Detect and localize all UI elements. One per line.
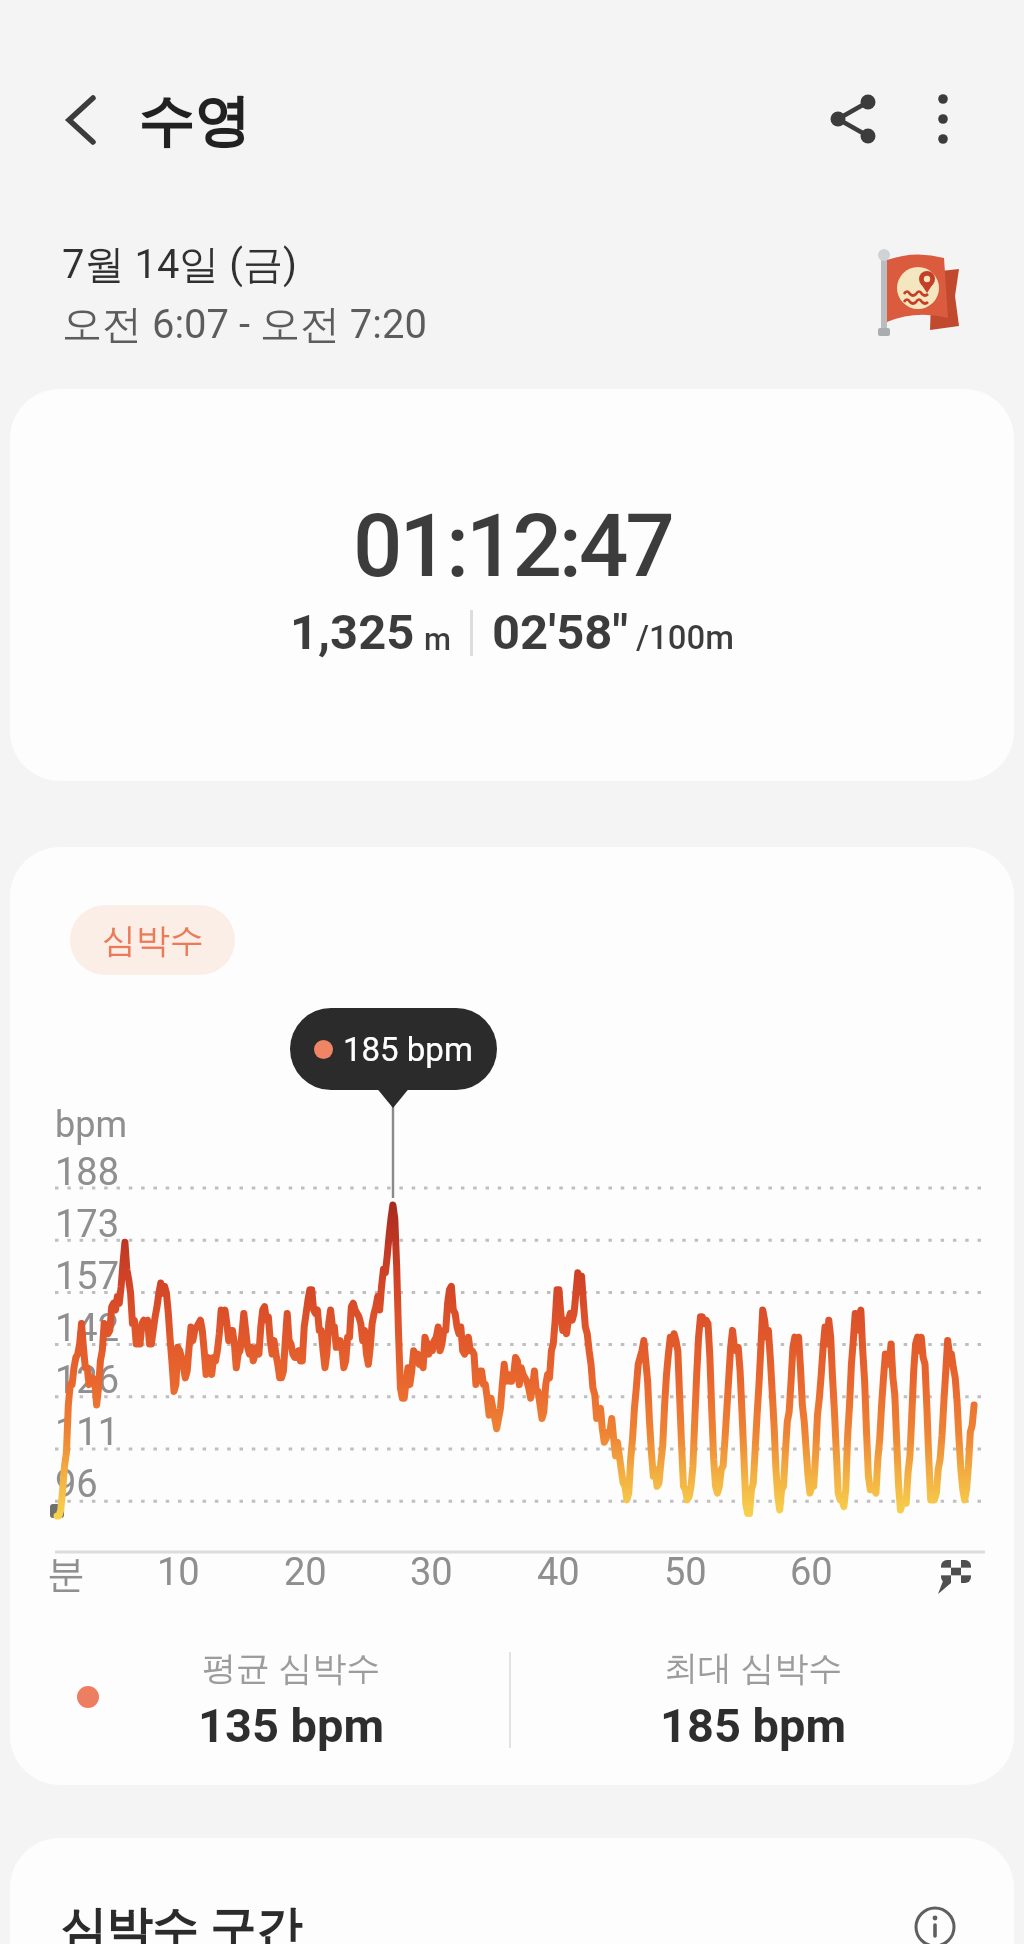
staticText: 185 bpm	[660, 1698, 847, 1753]
button[interactable]	[903, 1895, 967, 1944]
staticText: 심박수 구간	[60, 1900, 302, 1944]
staticText: 30	[410, 1550, 453, 1594]
staticText: 수영	[138, 86, 250, 157]
staticText: 1,325	[290, 604, 415, 661]
staticText: 96	[55, 1462, 98, 1507]
staticText: 173	[55, 1202, 120, 1247]
staticText: 126	[55, 1358, 120, 1403]
button[interactable]: 심박수	[70, 905, 235, 975]
staticText: 60	[790, 1550, 833, 1594]
staticText: /100m	[636, 618, 735, 657]
staticText: 40	[537, 1550, 580, 1594]
staticText: 20	[284, 1550, 327, 1594]
staticText: bpm	[55, 1104, 127, 1146]
button[interactable]	[898, 74, 988, 164]
staticText: 111	[55, 1410, 120, 1455]
staticText: 10	[157, 1550, 200, 1594]
staticText: 50	[664, 1550, 707, 1594]
staticText: 188	[55, 1150, 120, 1195]
staticText: 심박수	[102, 919, 204, 962]
staticText: 157	[55, 1254, 120, 1299]
staticText: 7월 14일 (금)	[62, 239, 297, 289]
staticText: 01:12:47	[353, 495, 672, 597]
staticText: 185 bpm	[343, 1030, 473, 1069]
staticText: 분	[47, 1550, 85, 1594]
staticText: 135 bpm	[198, 1698, 385, 1753]
staticText: 최대 심박수	[664, 1647, 843, 1689]
button[interactable]	[38, 78, 122, 162]
staticText: 02'58"	[492, 604, 629, 661]
staticText: 142	[55, 1306, 120, 1351]
staticText: 오전 6:07 - 오전 7:20	[62, 299, 427, 349]
staticText: m	[424, 621, 451, 657]
button[interactable]	[10, 1838, 1014, 1944]
staticText: 평균 심박수	[202, 1647, 381, 1689]
button[interactable]	[808, 74, 898, 164]
